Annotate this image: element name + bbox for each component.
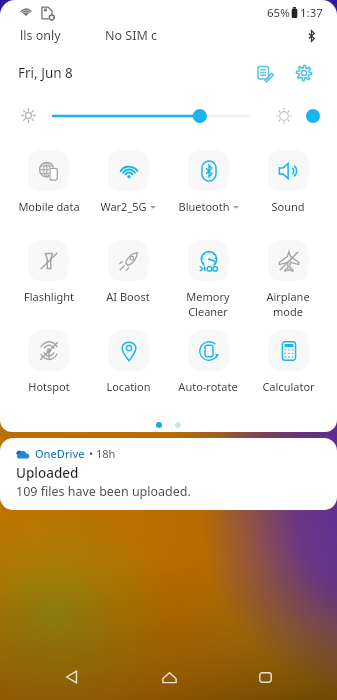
button[interactable]: Back xyxy=(48,654,96,700)
staticText: Memory xyxy=(186,289,230,304)
button[interactable]: Auto brightness xyxy=(306,109,320,123)
staticText: Uploaded xyxy=(16,464,79,482)
button[interactable]: Mobile data xyxy=(9,148,88,214)
button[interactable]: Calculator xyxy=(248,328,328,394)
button[interactable]: Edit quick settings xyxy=(252,60,278,86)
button[interactable]: Bluetooth xyxy=(168,148,248,214)
staticText: mode xyxy=(273,304,303,319)
staticText: Hotspot xyxy=(28,379,70,394)
button[interactable]: Hotspot xyxy=(9,328,88,394)
staticText: Bluetooth xyxy=(178,199,230,214)
button[interactable]: War2_5G xyxy=(88,148,168,214)
staticText: Airplane xyxy=(266,289,310,304)
button[interactable]: Location xyxy=(88,328,168,394)
staticText: AI Boost xyxy=(106,289,150,304)
button[interactable]: AI Boost xyxy=(88,238,168,304)
staticText: Mobile data xyxy=(18,199,80,214)
staticText: Calculator xyxy=(262,379,315,394)
button[interactable]: Flashlight xyxy=(9,238,88,304)
staticText: OneDrive xyxy=(35,446,85,461)
button[interactable]: Settings xyxy=(291,60,317,86)
staticText: 109 files have been uploaded. xyxy=(16,483,191,500)
staticText: • 18h xyxy=(89,446,116,461)
staticText: War2_5G xyxy=(100,199,147,214)
button[interactable]: Home xyxy=(145,654,193,700)
button[interactable]: Auto-rotate xyxy=(168,328,248,394)
staticText: Flashlight xyxy=(24,289,74,304)
button[interactable]: Sound xyxy=(248,148,328,214)
staticText: Location xyxy=(106,379,151,394)
button[interactable]: Airplane xyxy=(248,238,328,319)
staticText: No SIM c xyxy=(105,27,158,44)
staticText: 1:37 xyxy=(300,5,323,21)
staticText: Fri, Jun 8 xyxy=(18,64,73,82)
staticText: 65% xyxy=(267,5,290,21)
staticText: Cleaner xyxy=(188,304,228,319)
button[interactable]: OneDrive xyxy=(0,438,337,510)
button[interactable]: Memory xyxy=(168,238,248,319)
button[interactable]: Recent apps xyxy=(241,654,289,700)
staticText: lls only xyxy=(20,27,61,44)
staticText: Sound xyxy=(271,199,305,214)
staticText: Auto-rotate xyxy=(178,379,238,394)
